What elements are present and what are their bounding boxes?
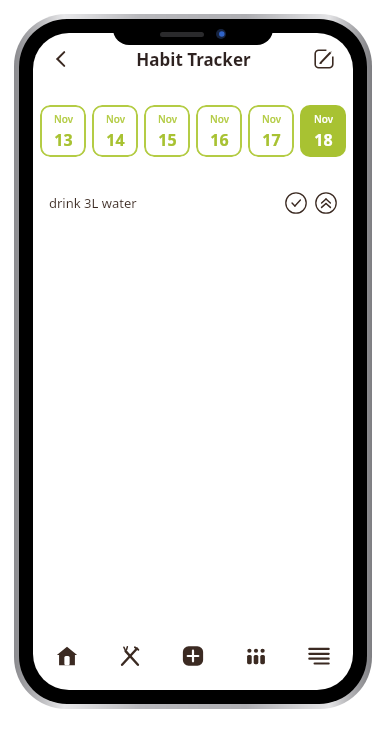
staticText: Nov (262, 112, 281, 126)
button[interactable]: Add (171, 634, 215, 678)
button[interactable]: Home (45, 634, 89, 678)
button[interactable]: Increase (313, 190, 339, 216)
button[interactable]: Community (234, 634, 278, 678)
button[interactable]: Nov (248, 105, 294, 157)
button[interactable]: Nov (144, 105, 190, 157)
button[interactable]: drink 3L water (33, 185, 353, 221)
staticText: 16 (210, 129, 229, 151)
staticText: Habit Tracker (136, 48, 251, 71)
button[interactable]: Meals (108, 634, 152, 678)
button[interactable]: Back (43, 41, 79, 77)
button[interactable]: Mark complete (283, 190, 309, 216)
staticText: Nov (210, 112, 229, 126)
button[interactable]: Nov (300, 105, 346, 157)
staticText: 13 (54, 129, 73, 151)
staticText: 17 (262, 129, 281, 151)
button[interactable]: Nov (196, 105, 242, 157)
button[interactable]: Menu (297, 634, 341, 678)
button[interactable]: Edit (307, 42, 341, 76)
staticText: Nov (106, 112, 125, 126)
staticText: Nov (314, 112, 333, 126)
staticText: drink 3L water (49, 194, 137, 212)
staticText: 14 (106, 129, 125, 151)
staticText: Nov (54, 112, 73, 126)
staticText: 15 (158, 129, 177, 151)
button[interactable]: Nov (92, 105, 138, 157)
button[interactable]: Nov (40, 105, 86, 157)
staticText: 18 (314, 129, 333, 151)
staticText: Nov (158, 112, 177, 126)
